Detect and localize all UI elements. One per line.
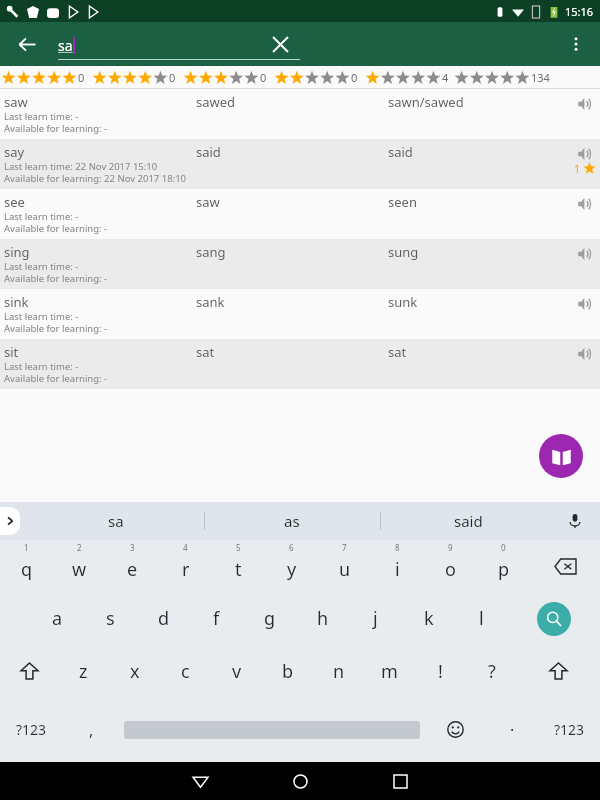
button[interactable]: c bbox=[160, 645, 211, 697]
button[interactable]: Pronounce say bbox=[570, 140, 598, 168]
staticText: 0 bbox=[169, 70, 176, 85]
button[interactable]: sing bbox=[0, 239, 600, 289]
button[interactable]: as bbox=[204, 502, 380, 540]
button[interactable]: 3 bbox=[106, 540, 159, 592]
button[interactable]: Emoji bbox=[424, 697, 486, 762]
button[interactable]: v bbox=[211, 645, 262, 697]
button[interactable]: Pronounce sing bbox=[570, 240, 598, 268]
button[interactable]: 0 bbox=[275, 70, 358, 85]
button[interactable]: x bbox=[109, 645, 160, 697]
button[interactable]: 1 bbox=[0, 540, 53, 592]
staticText: 6 bbox=[289, 542, 294, 553]
button[interactable]: d bbox=[137, 592, 190, 645]
staticText: u bbox=[339, 557, 351, 582]
staticText: Last learn time: - bbox=[4, 210, 79, 223]
staticText: sing bbox=[4, 243, 30, 261]
staticText: ? bbox=[488, 659, 496, 684]
button[interactable]: ? bbox=[466, 645, 517, 697]
button[interactable]: sa bbox=[28, 502, 204, 540]
staticText: y bbox=[287, 557, 297, 582]
button[interactable]: 0 bbox=[2, 70, 85, 85]
button[interactable]: b bbox=[262, 645, 313, 697]
staticText: sank bbox=[196, 293, 225, 311]
button[interactable]: 4 bbox=[159, 540, 212, 592]
button[interactable]: sa bbox=[58, 27, 300, 61]
button[interactable]: j bbox=[349, 592, 402, 645]
button[interactable]: 8 bbox=[371, 540, 424, 592]
button[interactable]: 5 bbox=[212, 540, 265, 592]
button[interactable]: Voice input bbox=[560, 506, 590, 536]
button[interactable]: Back bbox=[150, 762, 250, 800]
staticText: d bbox=[158, 606, 170, 631]
button[interactable]: More options bbox=[558, 26, 594, 62]
button[interactable]: a bbox=[31, 592, 84, 645]
button[interactable]: Pronounce sink bbox=[570, 290, 598, 318]
staticText: ?123 bbox=[554, 720, 585, 739]
staticText: Available for learning: 22 Nov 2017 18:1… bbox=[4, 172, 187, 185]
button[interactable]: n bbox=[313, 645, 364, 697]
button[interactable]: 6 bbox=[265, 540, 318, 592]
button[interactable]: Search bbox=[537, 602, 571, 636]
button[interactable]: 4 bbox=[366, 70, 449, 85]
staticText: 1 bbox=[574, 161, 581, 176]
button[interactable]: Shift bbox=[0, 645, 58, 697]
button[interactable]: Pronounce see bbox=[570, 190, 598, 218]
button[interactable]: 7 bbox=[318, 540, 371, 592]
staticText: sa bbox=[108, 511, 124, 531]
button[interactable]: 2 bbox=[53, 540, 106, 592]
button[interactable]: Backspace bbox=[530, 540, 600, 592]
button[interactable]: Pronounce saw bbox=[570, 90, 598, 118]
button[interactable]: 134 bbox=[455, 70, 550, 85]
button[interactable]: ! bbox=[415, 645, 466, 697]
button[interactable]: Expand bbox=[0, 507, 20, 535]
staticText: i bbox=[395, 557, 400, 582]
button[interactable]: see bbox=[0, 189, 600, 239]
staticText: Last learn time: - bbox=[4, 360, 79, 373]
button[interactable]: said bbox=[380, 502, 556, 540]
staticText: said bbox=[196, 143, 221, 161]
button[interactable]: Shift bbox=[517, 645, 600, 697]
button[interactable]: , bbox=[62, 697, 120, 762]
staticText: h bbox=[317, 606, 329, 631]
button[interactable]: m bbox=[364, 645, 415, 697]
button[interactable]: l bbox=[455, 592, 508, 645]
button[interactable]: 9 bbox=[424, 540, 477, 592]
button[interactable]: 0 bbox=[93, 70, 176, 85]
button[interactable]: h bbox=[296, 592, 349, 645]
staticText: l bbox=[479, 606, 484, 631]
button[interactable]: Recents bbox=[350, 762, 450, 800]
staticText: j bbox=[373, 606, 378, 631]
staticText: saw bbox=[196, 193, 220, 211]
button[interactable]: say bbox=[0, 139, 600, 189]
button[interactable]: f bbox=[190, 592, 243, 645]
button[interactable]: Space bbox=[124, 697, 420, 762]
button[interactable]: saw bbox=[0, 89, 600, 139]
staticText: c bbox=[181, 659, 190, 684]
staticText: 4 bbox=[183, 542, 188, 553]
staticText: 15:16 bbox=[565, 4, 594, 19]
staticText: 134 bbox=[531, 70, 550, 85]
staticText: said bbox=[454, 511, 483, 531]
button[interactable]: Back bbox=[10, 27, 44, 61]
button[interactable]: g bbox=[243, 592, 296, 645]
button[interactable]: s bbox=[84, 592, 137, 645]
button[interactable]: k bbox=[402, 592, 455, 645]
button[interactable]: 0 bbox=[184, 70, 267, 85]
staticText: ! bbox=[438, 659, 443, 684]
button[interactable]: sit bbox=[0, 339, 600, 389]
button[interactable]: Pronounce sit bbox=[570, 340, 598, 368]
button[interactable]: 0 bbox=[477, 540, 530, 592]
button[interactable]: · bbox=[486, 697, 538, 762]
button[interactable]: z bbox=[58, 645, 109, 697]
button[interactable]: Clear bbox=[262, 26, 298, 62]
button[interactable]: Home bbox=[250, 762, 350, 800]
button[interactable]: ?123 bbox=[538, 697, 600, 762]
staticText: 5 bbox=[236, 542, 241, 553]
button[interactable]: Open dictionary bbox=[539, 434, 583, 478]
staticText: as bbox=[284, 511, 300, 531]
button[interactable]: ?123 bbox=[0, 697, 62, 762]
button[interactable]: sink bbox=[0, 289, 600, 339]
staticText: z bbox=[79, 659, 88, 684]
staticText: r bbox=[182, 557, 190, 582]
staticText: 1 bbox=[24, 542, 29, 553]
